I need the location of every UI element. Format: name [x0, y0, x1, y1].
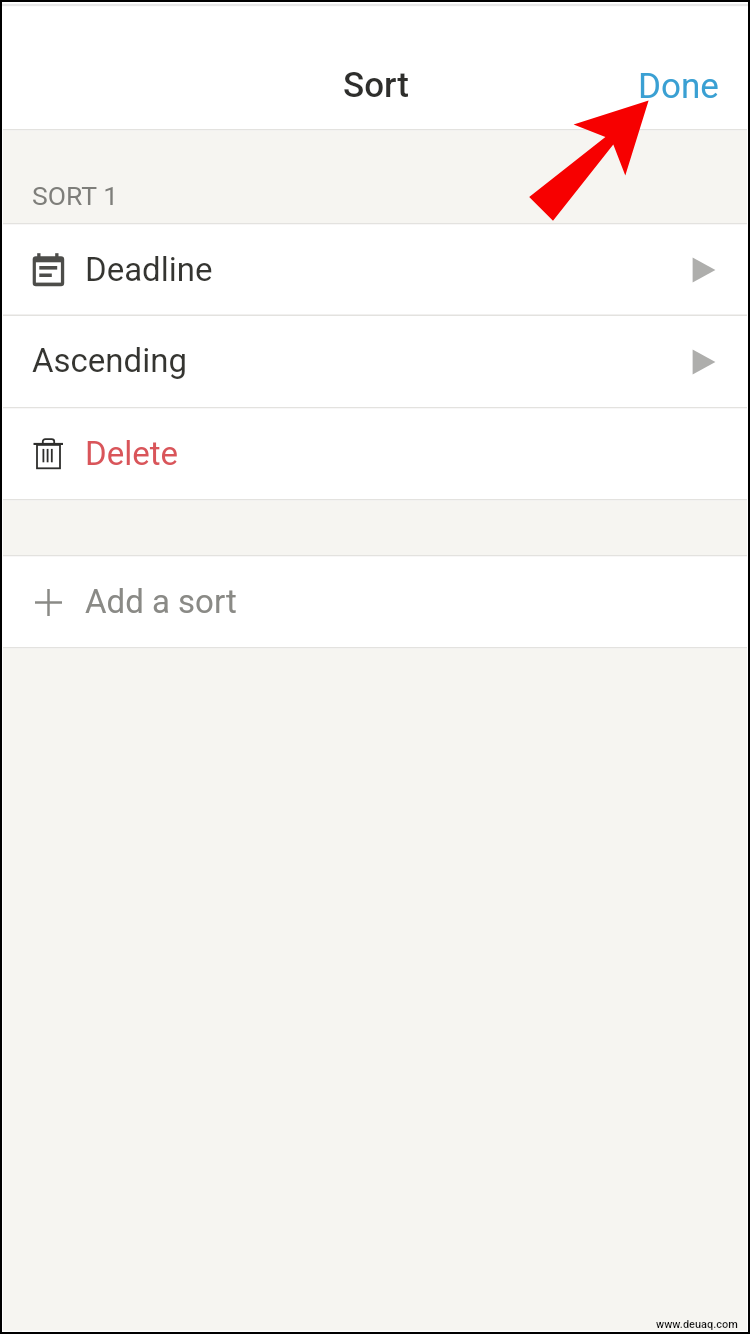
staticText: Done [638, 66, 719, 107]
staticText: Deadline [85, 250, 213, 289]
button[interactable]: Calendar [3, 225, 747, 315]
staticText: Ascending [32, 341, 187, 380]
other: Delete [32, 438, 65, 471]
button[interactable]: Done [612, 53, 745, 120]
staticText: Sort [343, 65, 409, 106]
button[interactable]: Delete [3, 409, 747, 500]
staticText: Add a sort [85, 582, 237, 621]
staticText: SORT 1 [32, 180, 119, 211]
other: Open [689, 347, 719, 377]
staticText: Delete [85, 434, 178, 473]
staticText: www.deuaq.com [656, 1318, 738, 1331]
other: Calendar [32, 254, 65, 287]
button[interactable]: Add [3, 557, 747, 648]
other: Open [689, 255, 719, 285]
button[interactable]: Ascending [3, 316, 747, 407]
other: Add [32, 586, 65, 619]
